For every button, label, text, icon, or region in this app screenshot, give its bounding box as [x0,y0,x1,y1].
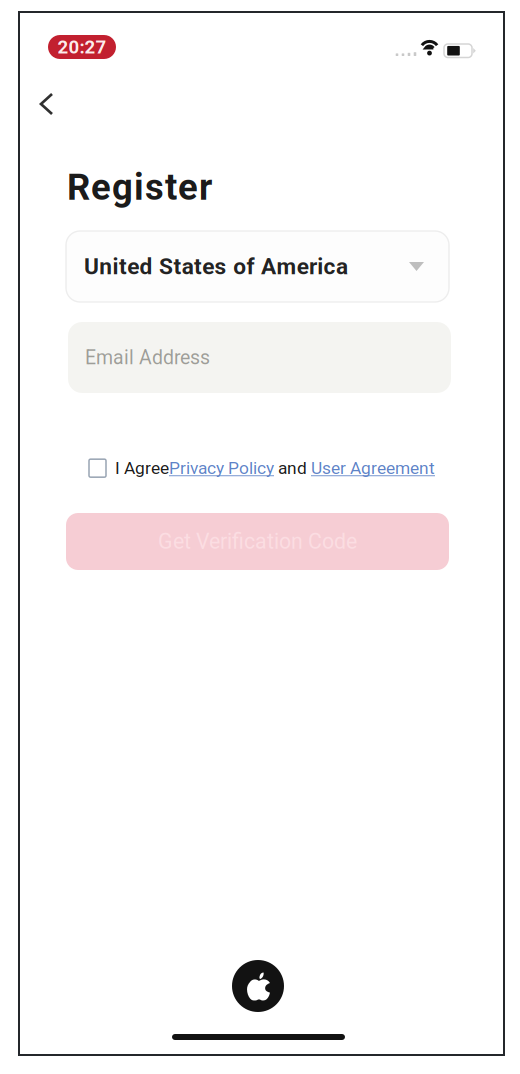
staticText: I Agree [115,458,169,478]
button[interactable]: Home [232,960,284,1012]
button[interactable]: Agree to terms [89,459,115,477]
staticText: 20:27 [57,36,106,58]
staticText: and [274,458,311,478]
button[interactable]: Privacy Policy [169,458,274,478]
button[interactable]: User Agreement [311,458,435,478]
staticText: User Agreement [311,458,435,478]
staticText: Get Verification Code [158,529,357,554]
button[interactable]: United States of America [66,231,449,302]
button[interactable]: Back [25,80,68,128]
staticText: Email Address [85,346,210,369]
staticText: Privacy Policy [169,458,274,478]
button[interactable]: Get Verification Code [66,513,449,570]
button[interactable]: Email Address [68,322,451,393]
staticText: United States of America [84,253,348,280]
staticText: Register [67,166,212,209]
